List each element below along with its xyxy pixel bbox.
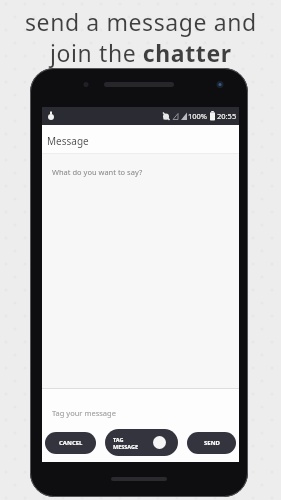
staticText: join the chatter bbox=[50, 37, 232, 68]
staticText: Message bbox=[47, 134, 89, 148]
staticText: TAG bbox=[113, 436, 124, 443]
staticText: MESSAGE bbox=[113, 443, 139, 450]
staticText: What do you want to say? bbox=[52, 167, 143, 177]
staticText: send a message and bbox=[25, 6, 257, 37]
staticText: 100% bbox=[188, 111, 208, 121]
staticText: 20:55 bbox=[217, 111, 237, 121]
button[interactable]: TAG bbox=[105, 429, 178, 456]
button[interactable]: What do you want to say? bbox=[42, 154, 239, 388]
staticText: Tag your message bbox=[52, 408, 116, 418]
button[interactable]: SEND bbox=[187, 432, 236, 454]
staticText: CANCEL bbox=[59, 439, 83, 447]
staticText: SEND bbox=[204, 439, 220, 447]
button[interactable]: CANCEL bbox=[45, 432, 96, 454]
